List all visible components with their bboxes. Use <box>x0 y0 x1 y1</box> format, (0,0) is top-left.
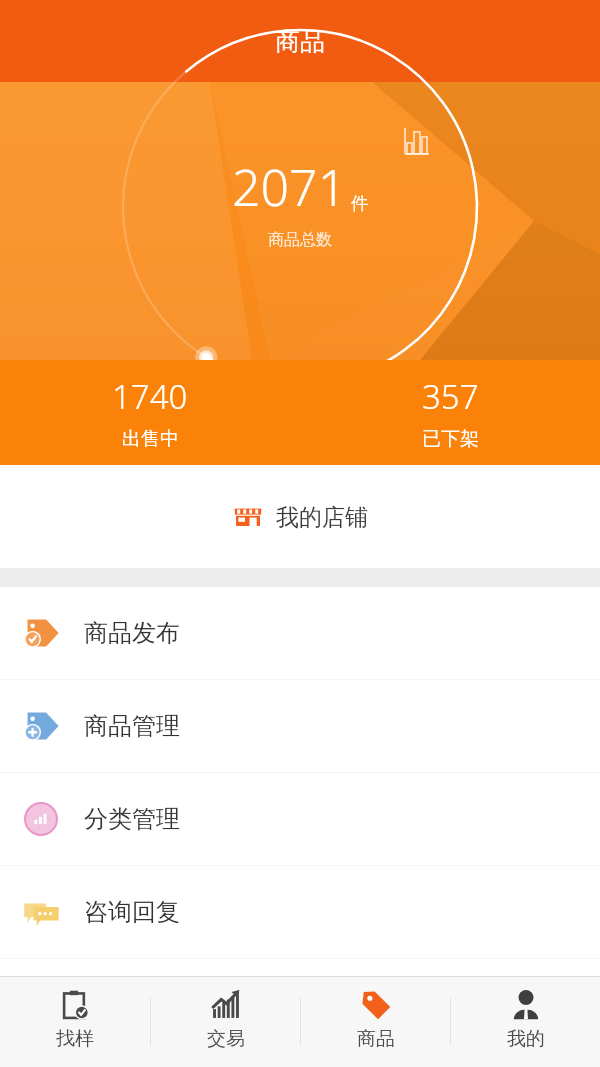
staticText: 2071 <box>232 153 347 221</box>
button[interactable]: 交易 <box>151 976 300 1067</box>
staticText: 我的 <box>507 1027 545 1051</box>
staticText: 商品发布 <box>84 618 180 648</box>
staticText: 出售中 <box>122 427 179 451</box>
button[interactable]: 商品发布 <box>0 587 600 679</box>
staticText: 已下架 <box>422 427 479 451</box>
button[interactable]: 我的店铺 <box>0 465 600 568</box>
staticText: 找样 <box>56 1027 94 1051</box>
staticText: 咨询回复 <box>84 897 180 927</box>
staticText: 商品管理 <box>84 711 180 741</box>
staticText: 我的店铺 <box>276 503 368 532</box>
button[interactable]: 商品 <box>301 976 450 1067</box>
staticText: 357 <box>422 374 479 419</box>
staticText: 商品 <box>357 1027 395 1051</box>
button[interactable]: 找样 <box>0 976 150 1067</box>
button[interactable]: 商品管理 <box>0 680 600 772</box>
staticText: 交易 <box>207 1027 245 1051</box>
staticText: 商品总数 <box>268 230 332 250</box>
staticText: 1740 <box>112 374 188 419</box>
button[interactable]: 分类管理 <box>0 773 600 865</box>
button[interactable]: 我的 <box>451 976 600 1067</box>
staticText: 件 <box>351 193 368 214</box>
button[interactable]: 1740 <box>0 360 300 465</box>
staticText: 商品 <box>275 26 325 57</box>
button[interactable]: 咨询回复 <box>0 866 600 958</box>
button[interactable]: 357 <box>300 360 600 465</box>
staticText: 分类管理 <box>84 804 180 834</box>
